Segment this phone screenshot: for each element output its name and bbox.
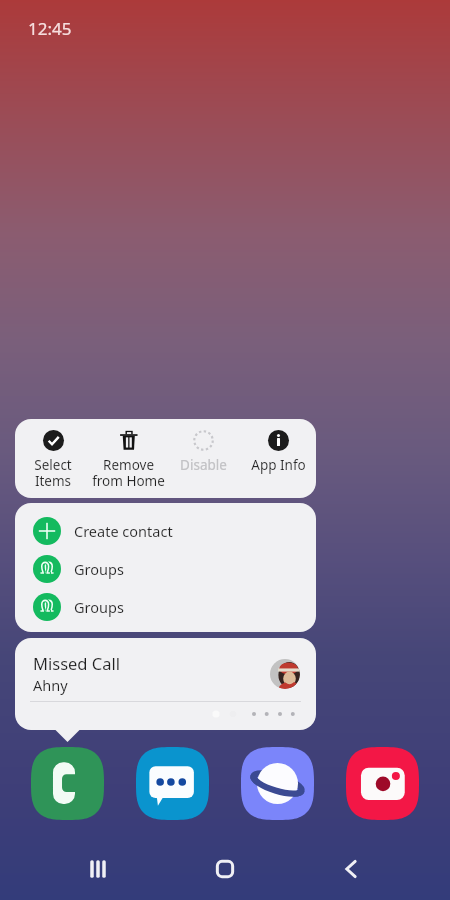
button[interactable]: Select Items <box>15 419 91 490</box>
button[interactable]: Internet <box>225 746 330 820</box>
staticText: Disable <box>180 456 227 474</box>
button[interactable]: Disable <box>166 419 241 474</box>
staticText: Ahny <box>33 675 68 695</box>
button[interactable]: Remove from Home <box>91 419 166 490</box>
staticText: 12:45 <box>28 17 72 40</box>
button[interactable]: Recents <box>67 838 129 900</box>
button[interactable]: Home <box>194 838 256 900</box>
staticText: Remove from Home <box>92 456 165 490</box>
staticText: Missed Call <box>33 652 120 674</box>
button[interactable]: Missed Call <box>15 638 316 730</box>
button[interactable]: Phone <box>15 746 120 820</box>
button[interactable]: App Info <box>241 419 316 474</box>
staticText: App Info <box>251 456 306 474</box>
button[interactable]: Create contact <box>15 512 316 550</box>
staticText: Select Items <box>34 456 72 490</box>
button[interactable]: Groups <box>15 588 316 626</box>
button[interactable]: Back <box>320 838 382 900</box>
staticText: Create contact <box>74 521 173 541</box>
staticText: Groups <box>74 559 124 579</box>
button[interactable]: Camera <box>330 746 435 820</box>
button[interactable]: Groups <box>15 550 316 588</box>
button[interactable]: Messages <box>120 746 225 820</box>
staticText: Groups <box>74 597 124 617</box>
